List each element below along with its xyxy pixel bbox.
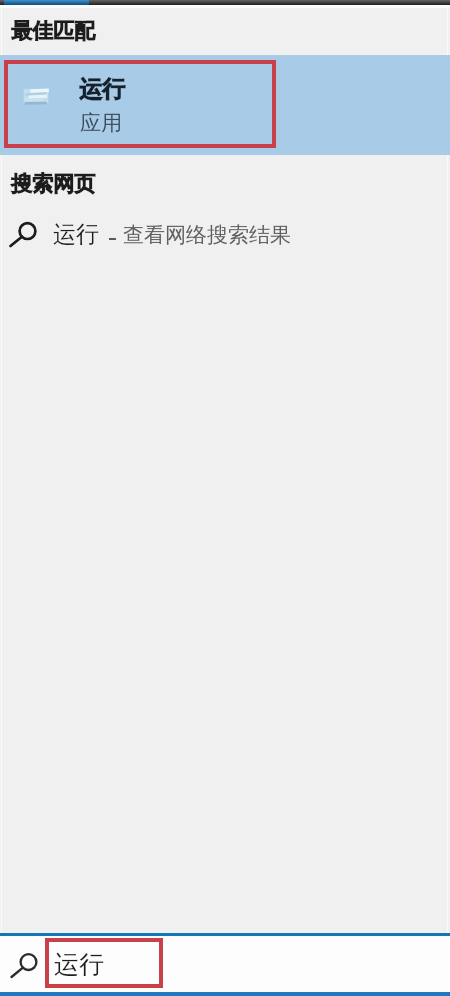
button[interactable] — [0, 936, 450, 992]
button[interactable]: Search the web — [0, 214, 450, 254]
other: Search the web — [9, 220, 37, 248]
staticText: 运行 — [54, 949, 104, 980]
other: Search — [10, 951, 38, 979]
staticText: 最佳匹配 — [11, 18, 95, 44]
button[interactable]: 运行 — [0, 55, 450, 155]
staticText: 应用 — [80, 110, 122, 136]
staticText: 运行 — [79, 75, 125, 104]
staticText: 搜索网页 — [11, 171, 95, 197]
staticText: 运行 — [53, 220, 99, 249]
staticText: 查看网络搜索结果 — [123, 222, 291, 248]
